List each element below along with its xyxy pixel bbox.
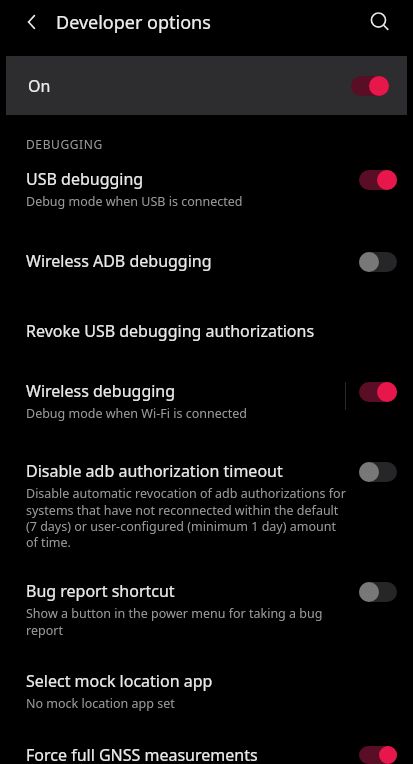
staticText: Wireless ADB debugging bbox=[26, 250, 212, 272]
button[interactable]: Revoke USB debugging authorizations bbox=[0, 320, 413, 342]
button[interactable]: USB debugging bbox=[0, 168, 413, 210]
staticText: USB debugging bbox=[26, 168, 144, 190]
staticText: Select mock location app bbox=[26, 670, 213, 692]
button[interactable]: On bbox=[6, 56, 407, 115]
staticText: Debug mode when Wi-Fi is connected bbox=[26, 405, 247, 422]
button[interactable]: Search bbox=[361, 3, 399, 41]
button[interactable]: Wireless ADB debugging bbox=[0, 250, 413, 272]
button[interactable]: Select mock location app bbox=[0, 670, 413, 712]
staticText: No mock location app set bbox=[26, 695, 175, 712]
staticText: DEBUGGING bbox=[26, 136, 103, 152]
staticText: Disable automatic revocation of adb auth… bbox=[26, 485, 347, 550]
staticText: Debug mode when USB is connected bbox=[26, 193, 243, 210]
staticText: Disable adb authorization timeout bbox=[26, 460, 283, 482]
staticText: Bug report shortcut bbox=[26, 580, 175, 602]
button[interactable]: Disable adb authorization timeout bbox=[0, 460, 413, 550]
staticText: Force full GNSS measurements bbox=[26, 744, 258, 764]
staticText: Revoke USB debugging authorizations bbox=[26, 320, 315, 342]
button[interactable]: Force full GNSS measurements bbox=[0, 744, 413, 764]
button[interactable]: Bug report shortcut bbox=[0, 580, 413, 638]
button[interactable]: Wireless debugging bbox=[0, 380, 413, 422]
staticText: Wireless debugging bbox=[26, 380, 176, 402]
staticText: Developer options bbox=[56, 10, 211, 35]
staticText: On bbox=[28, 75, 51, 97]
button[interactable]: Back bbox=[14, 4, 50, 40]
staticText: Show a button in the power menu for taki… bbox=[26, 605, 347, 638]
